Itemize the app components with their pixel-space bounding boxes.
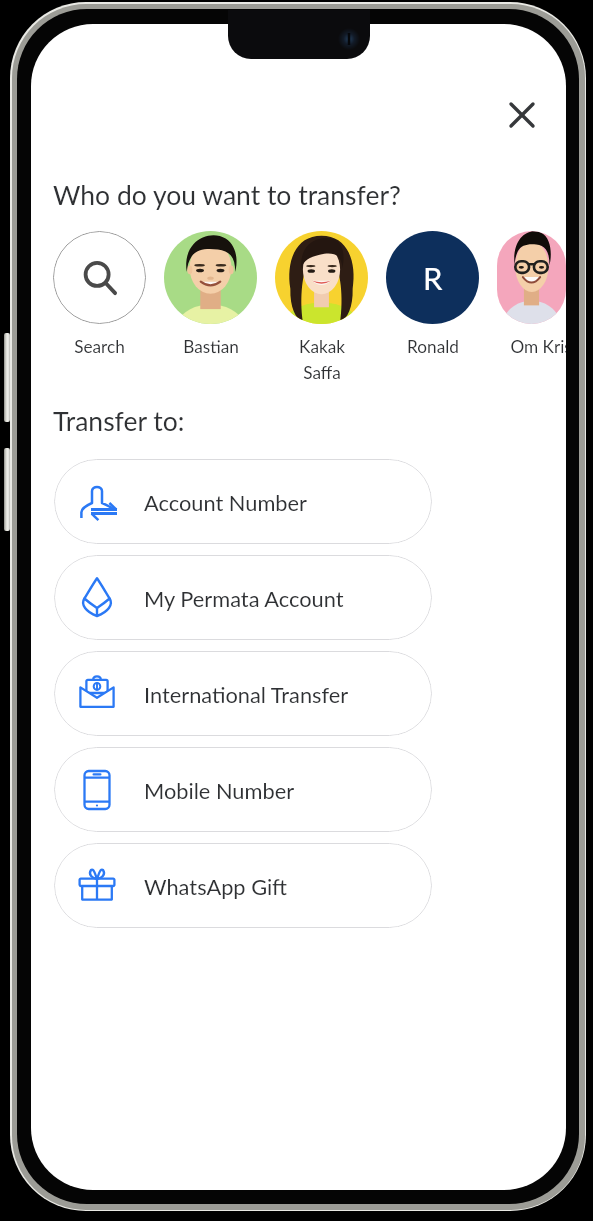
- staticText: Om Kristian: [510, 336, 566, 357]
- staticText: Who do you want to transfer?: [53, 179, 401, 211]
- staticText: R: [423, 259, 443, 296]
- staticText: Ronald: [407, 336, 459, 357]
- staticText: Search: [74, 336, 125, 357]
- staticText: Bastian: [183, 336, 239, 357]
- button[interactable]: Account Number: [54, 459, 432, 544]
- staticText: International Transfer: [144, 681, 349, 707]
- button[interactable]: R: [386, 231, 479, 357]
- staticText: Mobile Number: [144, 777, 295, 803]
- button[interactable]: Close: [499, 92, 545, 138]
- button[interactable]: Om Kristian: [497, 231, 566, 357]
- button[interactable]: Kakak Saffa: [275, 231, 368, 383]
- button[interactable]: WhatsApp Gift: [54, 843, 432, 928]
- button[interactable]: My Permata Account: [54, 555, 432, 640]
- staticText: Kakak Saffa: [299, 336, 345, 383]
- staticText: Account Number: [144, 489, 307, 515]
- button[interactable]: Mobile Number: [54, 747, 432, 832]
- staticText: WhatsApp Gift: [144, 873, 288, 899]
- staticText: My Permata Account: [144, 585, 344, 611]
- staticText: Transfer to:: [53, 405, 185, 437]
- button[interactable]: Search: [53, 231, 146, 357]
- button[interactable]: Bastian: [164, 231, 257, 357]
- button[interactable]: International Transfer: [54, 651, 432, 736]
